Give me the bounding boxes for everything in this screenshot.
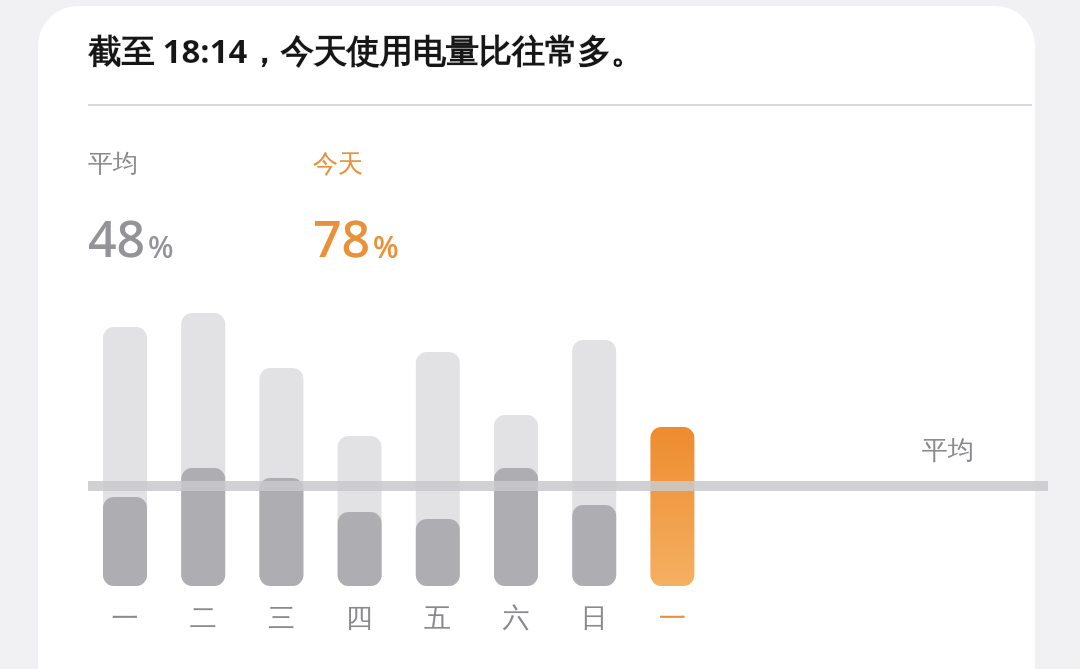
button[interactable]: Battery usage chart: [0, 0, 1080, 669]
